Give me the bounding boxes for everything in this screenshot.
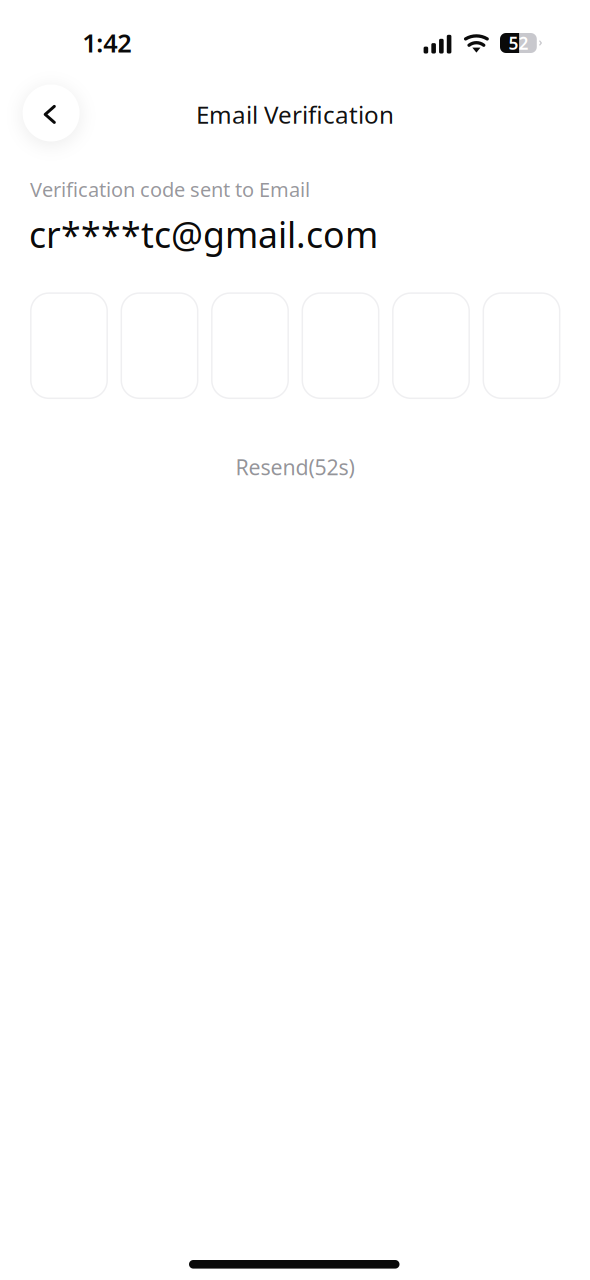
staticText: Email Verification: [196, 98, 394, 131]
staticText: 1:42: [82, 25, 131, 60]
button[interactable]: Resend(52s): [0, 452, 590, 482]
staticText: cr****tc@gmail.com: [29, 210, 378, 258]
staticText: Resend(52s): [235, 453, 354, 481]
staticText: 52: [508, 31, 528, 54]
staticText: Verification code sent to Email: [30, 176, 310, 203]
button[interactable]: Back: [23, 84, 80, 141]
